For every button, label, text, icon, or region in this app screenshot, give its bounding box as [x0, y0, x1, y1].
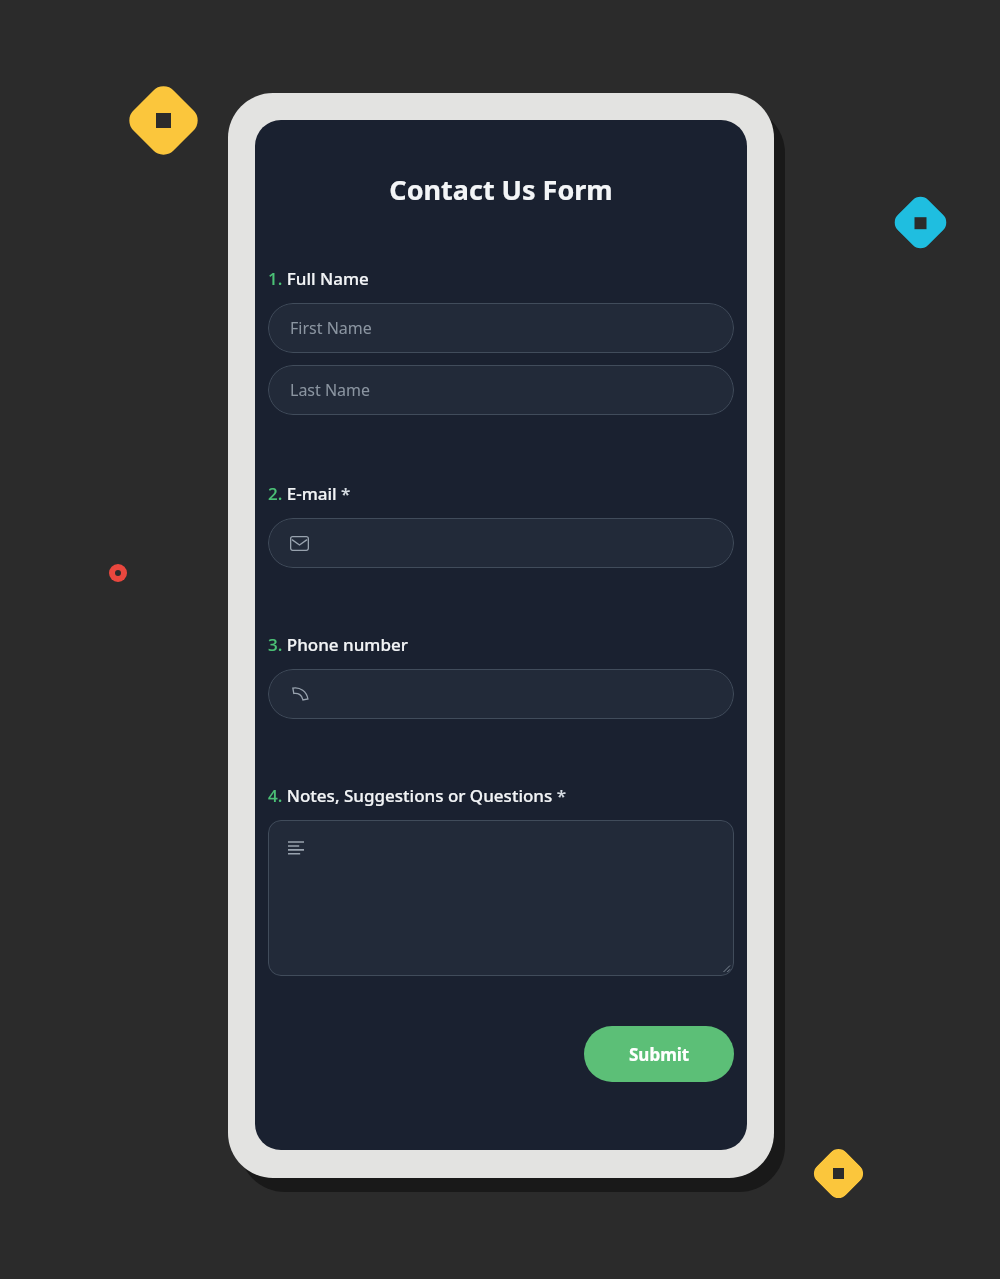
button[interactable]: Email	[268, 518, 734, 568]
staticText: 1. Full Name	[268, 267, 369, 290]
button[interactable]: Last Name	[268, 365, 734, 415]
staticText: 3. Phone number	[268, 633, 408, 656]
button[interactable]: Submit	[584, 1026, 734, 1082]
staticText: Last Name	[290, 379, 371, 401]
staticText: Submit	[629, 1043, 690, 1066]
button[interactable]: First Name	[268, 303, 734, 353]
staticText: 2. E-mail *	[268, 482, 351, 505]
staticText: Contact Us Form	[255, 171, 747, 208]
staticText: 4. Notes, Suggestions or Questions *	[268, 784, 567, 807]
staticText: First Name	[290, 317, 372, 339]
button[interactable]: Phone number	[268, 669, 734, 719]
button[interactable]: Notes field	[268, 820, 734, 976]
